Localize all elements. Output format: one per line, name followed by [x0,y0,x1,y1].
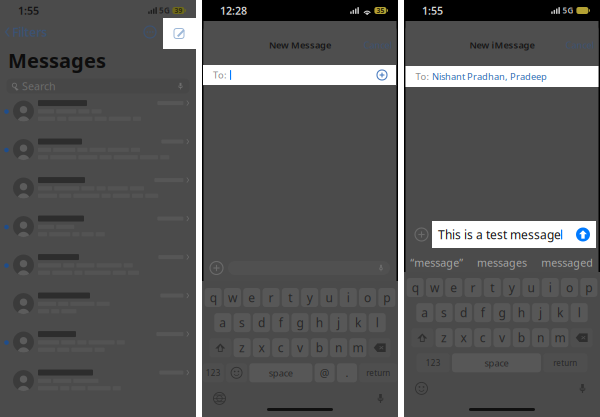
button[interactable]: l [369,313,386,332]
button[interactable]: j [532,303,549,322]
button[interactable]: return [359,363,397,382]
button[interactable]: Search [0,74,189,94]
button[interactable]: Delete [369,338,391,357]
button[interactable]: c [474,328,491,347]
button[interactable]: q [205,288,222,307]
button[interactable]: More options [140,22,160,42]
staticText: l [376,315,379,330]
button[interactable] [0,137,196,176]
button[interactable]: u [522,278,539,297]
button[interactable]: e [445,278,462,297]
button[interactable]: p [580,278,597,297]
button[interactable]: Delete [571,328,593,347]
staticText: w [228,289,237,305]
button[interactable]: Add attachment [415,228,428,241]
button[interactable]: t [484,278,501,297]
button[interactable]: To field [203,65,396,85]
button[interactable] [0,99,196,137]
button[interactable]: Dictation [575,381,590,395]
button[interactable]: x [253,338,270,357]
button[interactable]: v [493,328,510,347]
staticText: e [450,279,457,295]
button[interactable]: m [349,338,366,357]
button[interactable]: messaged [535,253,600,272]
button[interactable]: f [474,303,491,322]
button[interactable] [0,291,196,330]
button[interactable] [0,368,196,407]
button[interactable]: f [272,313,289,332]
button[interactable]: space [452,353,541,372]
staticText: . [345,366,348,380]
button[interactable]: “message” [404,253,469,272]
button[interactable]: Add attachment [210,261,223,274]
button[interactable]: o [561,278,578,297]
button[interactable]: w [426,278,443,297]
button[interactable]: Compose new message [163,18,196,49]
button[interactable]: messages [469,253,535,272]
button[interactable]: n [532,328,549,347]
button[interactable]: Message field, This is a test message [432,221,596,248]
button[interactable]: 123 [417,353,450,372]
button[interactable]: Cancel [560,35,598,55]
button[interactable]: w [224,288,241,307]
button[interactable]: return [543,353,587,372]
button[interactable]: i [542,278,559,297]
button[interactable]: k [349,313,366,332]
button[interactable] [0,253,196,291]
button[interactable]: z [436,328,453,347]
button[interactable]: s [436,303,453,322]
button[interactable]: g [493,303,510,322]
button[interactable]: p [378,288,395,307]
button[interactable]: space [249,363,312,382]
button[interactable]: i [340,288,357,307]
button[interactable]: z [234,338,251,357]
button[interactable]: Shift [209,338,231,357]
button[interactable] [0,330,196,368]
button[interactable]: m [551,328,568,347]
button[interactable]: a [214,313,231,332]
staticText: p [585,279,592,295]
button[interactable]: e [243,288,260,307]
button[interactable] [0,214,196,253]
button[interactable]: b [513,328,530,347]
button[interactable] [0,176,196,214]
button[interactable]: t [282,288,299,307]
button[interactable]: d [253,313,270,332]
button[interactable]: r [464,278,481,297]
button[interactable]: v [291,338,308,357]
button[interactable]: Change keyboard [212,391,227,405]
button[interactable]: g [291,313,308,332]
button[interactable]: Shift [411,328,433,347]
button[interactable]: Emoji [226,363,247,382]
button[interactable]: u [320,288,337,307]
button[interactable]: 123 [203,363,224,382]
button[interactable]: x [455,328,472,347]
button[interactable]: d [455,303,472,322]
button[interactable]: a [416,303,433,322]
button[interactable]: n [330,338,347,357]
button[interactable]: Dictation [373,391,388,405]
button[interactable]: To field [405,66,598,87]
button[interactable]: h [311,313,328,332]
button[interactable]: s [234,313,251,332]
button[interactable]: Filters [0,20,47,44]
button[interactable]: Cancel [358,35,396,55]
staticText: z [239,340,245,356]
button[interactable]: y [301,288,318,307]
button[interactable]: @ [315,363,335,382]
button[interactable]: c [272,338,289,357]
button[interactable]: j [330,313,347,332]
button[interactable]: q [407,278,424,297]
button[interactable]: r [263,288,280,307]
button[interactable]: Emoji keyboard [414,381,429,395]
button[interactable]: o [359,288,376,307]
button[interactable]: h [513,303,530,322]
button[interactable]: l [571,303,588,322]
staticText: New Message [269,39,331,51]
staticText: space [484,357,508,369]
button[interactable]: k [551,303,568,322]
button[interactable]: b [311,338,328,357]
button[interactable]: y [503,278,520,297]
